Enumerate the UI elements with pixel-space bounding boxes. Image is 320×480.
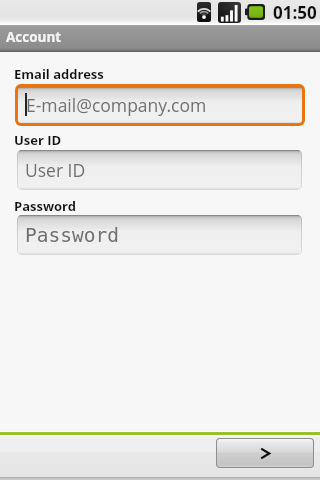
button[interactable] xyxy=(18,215,301,254)
button[interactable]: Next xyxy=(217,439,313,467)
staticText: User ID xyxy=(14,131,62,149)
button[interactable] xyxy=(18,87,302,123)
staticText: Account xyxy=(6,28,62,46)
staticText: Email address xyxy=(14,65,104,83)
staticText: Password xyxy=(14,197,76,215)
staticText: 01:50 xyxy=(273,1,317,24)
staticText: Password xyxy=(25,224,119,247)
staticText: User ID xyxy=(25,158,86,182)
button[interactable] xyxy=(18,150,301,189)
staticText: E-mail@company.com xyxy=(26,93,207,117)
